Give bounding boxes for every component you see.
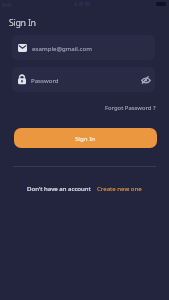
button[interactable]: example@gmail.com (12, 35, 155, 60)
staticText: Password (31, 76, 59, 84)
staticText: Forgot Password ? (105, 104, 156, 112)
staticText: Don't have an account (27, 184, 91, 192)
staticText: 9:41 (2, 1, 13, 8)
staticText: Sign In (75, 134, 96, 142)
staticText: Create new one (97, 184, 142, 192)
button[interactable]: Forgot Password ? (104, 103, 157, 113)
button[interactable]: Show password (141, 76, 151, 84)
button[interactable]: Password (12, 67, 155, 92)
button[interactable]: Create new one (97, 184, 142, 192)
staticText: example@gmail.com (32, 44, 92, 52)
staticText: Sign In (9, 17, 36, 29)
button[interactable]: Sign In (14, 128, 157, 148)
